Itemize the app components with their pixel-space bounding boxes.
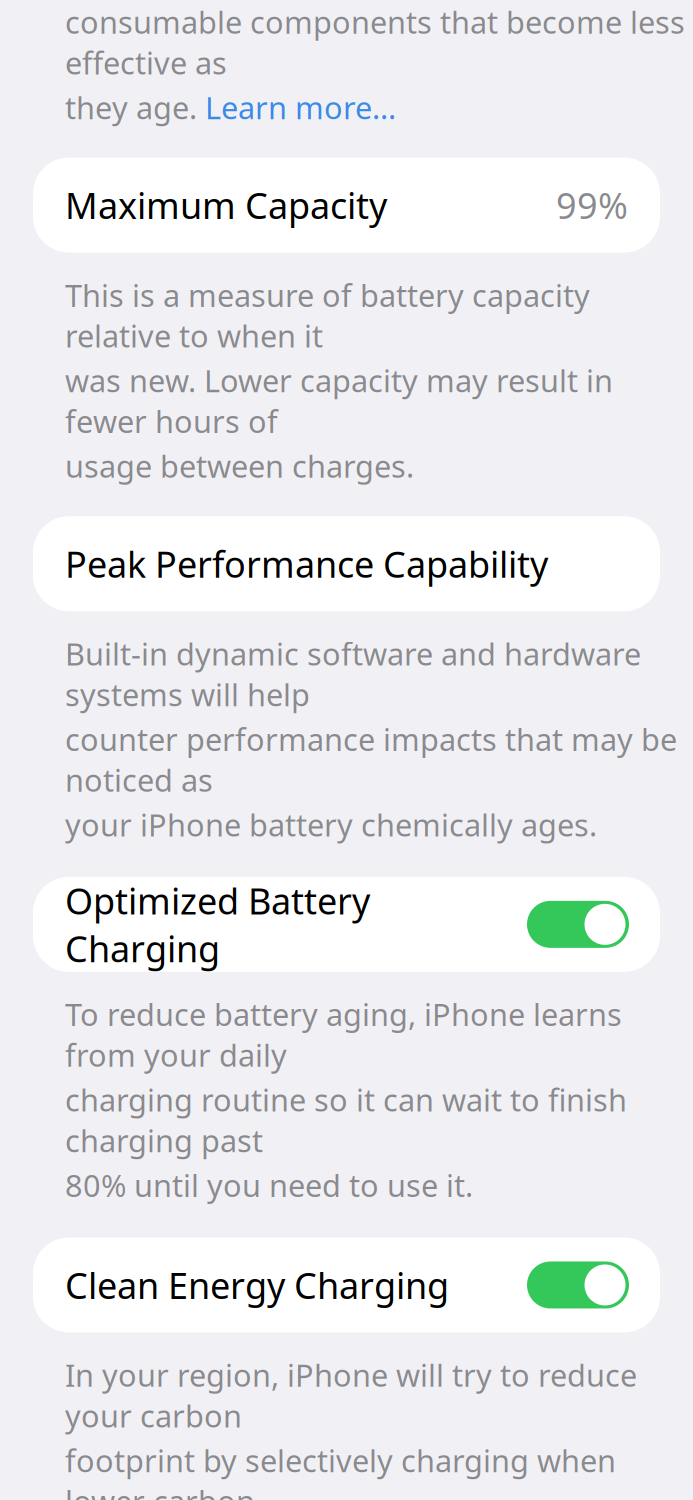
staticText: In your region, iPhone will try to reduc… xyxy=(65,1354,637,1436)
staticText: 80% until you need to use it. xyxy=(65,1165,473,1205)
button[interactable]: Clean Energy Charging xyxy=(33,1237,660,1332)
staticText: Peak Performance Capability xyxy=(65,540,548,588)
staticText: Learn more... xyxy=(205,87,396,128)
button[interactable]: Optimized Battery Charging xyxy=(33,877,660,972)
staticText: Maximum Capacity xyxy=(65,181,387,229)
button[interactable]: Maximum Capacity xyxy=(33,158,660,253)
staticText: was new. Lower capacity may result in fe… xyxy=(65,360,613,441)
staticText: they age. xyxy=(65,87,205,128)
staticText: consumable components that become less e… xyxy=(65,1,685,83)
staticText: Optimized Battery Charging xyxy=(65,877,370,972)
staticText: Clean Energy Charging xyxy=(65,1261,449,1309)
staticText: charging routine so it can wait to finis… xyxy=(65,1079,627,1161)
staticText: This is a measure of battery capacity re… xyxy=(65,275,590,356)
staticText: To reduce battery aging, iPhone learns f… xyxy=(65,994,622,1075)
staticText: your iPhone battery chemically ages. xyxy=(65,804,597,845)
button[interactable]: Learn more... xyxy=(205,87,396,128)
staticText: Built-in dynamic software and hardware s… xyxy=(65,633,641,715)
staticText: counter performance impacts that may be … xyxy=(65,719,677,800)
staticText: footprint by selectively charging when l… xyxy=(65,1440,616,1500)
staticText: 99% xyxy=(556,181,628,229)
staticText: usage between charges. xyxy=(65,445,414,486)
button[interactable]: Peak Performance Capability xyxy=(33,516,660,611)
